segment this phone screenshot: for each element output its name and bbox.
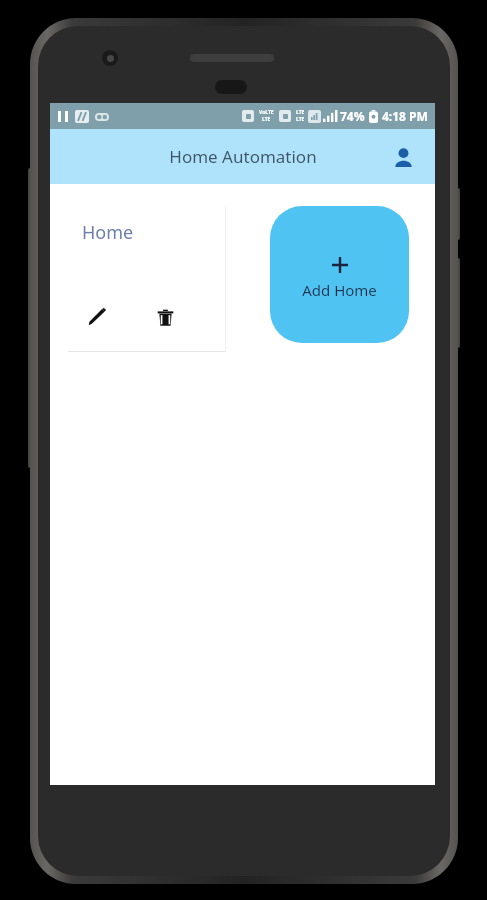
button[interactable]: Delete: [151, 303, 179, 331]
button[interactable]: Account: [383, 137, 423, 177]
staticText: VoLTE: [259, 109, 274, 116]
staticText: LTE: [296, 109, 305, 116]
staticText: 74%: [340, 108, 365, 124]
button[interactable]: Home: [67, 206, 226, 352]
button[interactable]: Edit: [83, 303, 111, 331]
staticText: Home: [82, 220, 134, 245]
staticText: 4:18 PM: [382, 108, 428, 124]
staticText: LTE: [296, 116, 305, 123]
staticText: LTE: [262, 116, 271, 123]
staticText: Add Home: [302, 280, 377, 300]
button[interactable]: Add Home: [270, 206, 409, 343]
staticText: Home Automation: [169, 145, 317, 168]
